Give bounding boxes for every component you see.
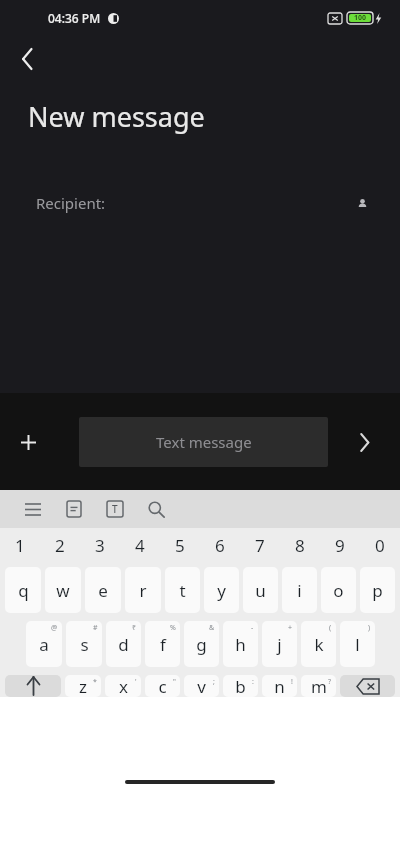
staticText: " xyxy=(173,677,176,687)
staticText: l xyxy=(355,633,360,656)
staticText: y xyxy=(217,579,226,602)
staticText: ) xyxy=(368,623,371,633)
button[interactable]: & xyxy=(184,621,219,667)
staticText: @ xyxy=(51,623,58,633)
staticText: 2 xyxy=(55,534,65,557)
staticText: ; xyxy=(213,677,215,687)
staticText: x xyxy=(119,675,128,697)
staticText: m xyxy=(311,675,327,697)
staticText: New message xyxy=(28,98,205,135)
button[interactable]: 7 xyxy=(240,528,280,562)
staticText: e xyxy=(98,579,108,602)
staticText: ' xyxy=(135,677,137,687)
staticText: w xyxy=(56,579,70,602)
button[interactable]: 0 xyxy=(360,528,400,562)
button[interactable]: ! xyxy=(262,675,297,697)
button[interactable]: # xyxy=(66,621,102,667)
staticText: * xyxy=(93,677,97,687)
staticText: 100 xyxy=(354,13,367,23)
button[interactable]: + xyxy=(262,621,297,667)
staticText: ? xyxy=(328,677,332,687)
button[interactable]: " xyxy=(145,675,180,697)
button[interactable]: Backspace xyxy=(340,675,395,697)
staticText: 4 xyxy=(135,534,145,557)
button[interactable]: Clipboard xyxy=(59,494,89,524)
button[interactable]: % xyxy=(145,621,180,667)
staticText: ₹ xyxy=(132,623,137,633)
button[interactable]: ? xyxy=(301,675,336,697)
staticText: 3 xyxy=(95,534,105,557)
staticText: ! xyxy=(291,677,293,687)
staticText: 7 xyxy=(255,534,265,557)
button[interactable]: q xyxy=(5,567,41,613)
button[interactable]: ; xyxy=(184,675,219,697)
staticText: n xyxy=(274,675,285,697)
button[interactable]: Text message xyxy=(79,417,328,467)
staticText: h xyxy=(235,633,246,656)
staticText: T xyxy=(112,502,118,516)
staticText: - xyxy=(251,623,254,633)
staticText: k xyxy=(314,633,324,656)
button[interactable]: o xyxy=(321,567,356,613)
button[interactable]: ₹ xyxy=(106,621,141,667)
button[interactable]: * xyxy=(65,675,101,697)
button[interactable]: u xyxy=(243,567,278,613)
staticText: d xyxy=(118,633,129,656)
staticText: g xyxy=(196,633,207,656)
button[interactable]: Pick contact xyxy=(344,185,380,221)
button[interactable]: Send xyxy=(342,420,386,464)
staticText: # xyxy=(93,623,98,633)
staticText: a xyxy=(39,633,49,656)
staticText: p xyxy=(372,579,383,602)
button[interactable]: Add attachment xyxy=(0,414,56,470)
button[interactable]: i xyxy=(282,567,317,613)
button[interactable]: ) xyxy=(340,621,375,667)
button[interactable]: 1 xyxy=(0,528,40,562)
button[interactable]: ( xyxy=(301,621,336,667)
button[interactable]: Recipient: xyxy=(0,183,400,223)
staticText: ( xyxy=(329,623,332,633)
staticText: f xyxy=(160,633,166,656)
staticText: 5 xyxy=(175,534,185,557)
staticText: : xyxy=(252,677,254,687)
button[interactable]: Shift xyxy=(5,675,61,697)
button[interactable]: Menu xyxy=(18,494,48,524)
button[interactable]: e xyxy=(85,567,121,613)
button[interactable]: Search xyxy=(141,494,171,524)
staticText: 6 xyxy=(215,534,225,557)
button[interactable]: - xyxy=(223,621,258,667)
staticText: j xyxy=(277,633,282,656)
button[interactable]: 2 xyxy=(40,528,80,562)
staticText: r xyxy=(139,579,147,602)
staticText: 0 xyxy=(375,534,385,557)
button[interactable]: Back xyxy=(0,36,56,82)
button[interactable]: 9 xyxy=(320,528,360,562)
button[interactable]: 6 xyxy=(200,528,240,562)
button[interactable]: y xyxy=(204,567,239,613)
staticText: v xyxy=(197,675,206,697)
button[interactable]: 3 xyxy=(80,528,120,562)
button[interactable]: @ xyxy=(26,621,62,667)
button[interactable]: r xyxy=(125,567,161,613)
button[interactable]: Text style xyxy=(100,494,130,524)
staticText: & xyxy=(209,623,215,633)
staticText: % xyxy=(170,623,176,633)
button[interactable]: p xyxy=(360,567,395,613)
button[interactable]: t xyxy=(165,567,200,613)
staticText: z xyxy=(79,675,87,697)
button[interactable]: : xyxy=(223,675,258,697)
staticText: o xyxy=(333,579,344,602)
button[interactable]: 8 xyxy=(280,528,320,562)
button[interactable]: ' xyxy=(105,675,141,697)
staticText: 9 xyxy=(335,534,345,557)
staticText: u xyxy=(255,579,266,602)
staticText: i xyxy=(297,579,302,602)
button[interactable]: 4 xyxy=(120,528,160,562)
staticText: + xyxy=(288,623,293,633)
staticText: Recipient: xyxy=(36,193,106,213)
staticText: b xyxy=(235,675,246,697)
staticText: 04:36 PM xyxy=(48,10,101,26)
staticText: q xyxy=(18,579,29,602)
button[interactable]: 5 xyxy=(160,528,200,562)
button[interactable]: w xyxy=(45,567,81,613)
